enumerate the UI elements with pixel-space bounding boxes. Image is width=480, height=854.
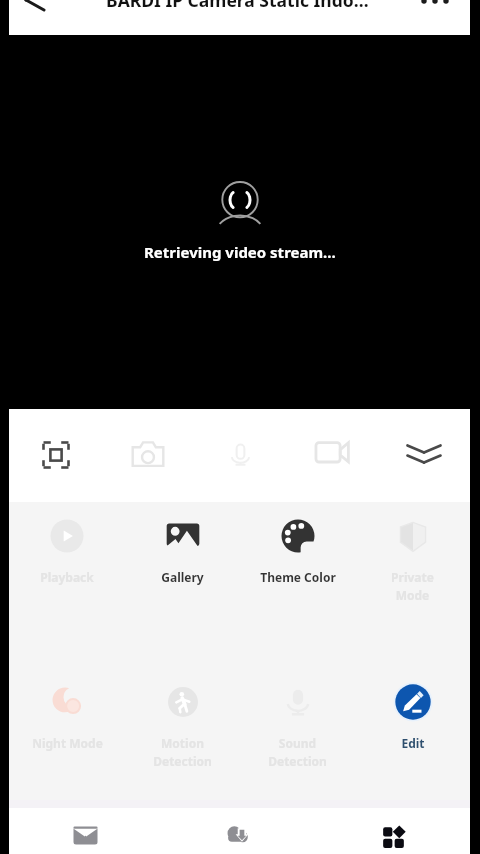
button[interactable]: More [316,808,470,854]
button[interactable]: Back [17,0,53,17]
button[interactable]: Record video [286,409,378,502]
button[interactable]: Collapse [378,409,470,502]
button[interactable]: More options [417,0,453,18]
button[interactable]: Cloud storage [162,808,316,854]
button[interactable]: Edit [355,685,470,751]
staticText: Motion Detection [153,735,212,770]
staticText: Playback [40,569,94,585]
button[interactable]: Messages [9,808,162,854]
staticText: Theme Color [260,569,336,585]
button[interactable]: Motion Detection [125,685,240,770]
staticText: Retrieving video stream... [144,242,336,262]
button[interactable]: Theme Color [240,519,355,585]
staticText: BARDI IP Camera Static Indo… [106,0,369,12]
button[interactable]: Night Mode [9,685,125,751]
button[interactable]: Private Mode [355,519,470,604]
staticText: Private Mode [391,569,434,604]
button[interactable]: Fullscreen [9,409,102,502]
staticText: Night Mode [32,735,103,751]
staticText: Edit [401,735,425,751]
button[interactable]: Playback [9,519,125,585]
button[interactable]: Gallery [125,519,240,585]
staticText: Sound Detection [268,735,327,770]
button[interactable]: Sound Detection [240,685,355,770]
staticText: Gallery [161,569,204,585]
button[interactable]: Snapshot [102,409,194,502]
